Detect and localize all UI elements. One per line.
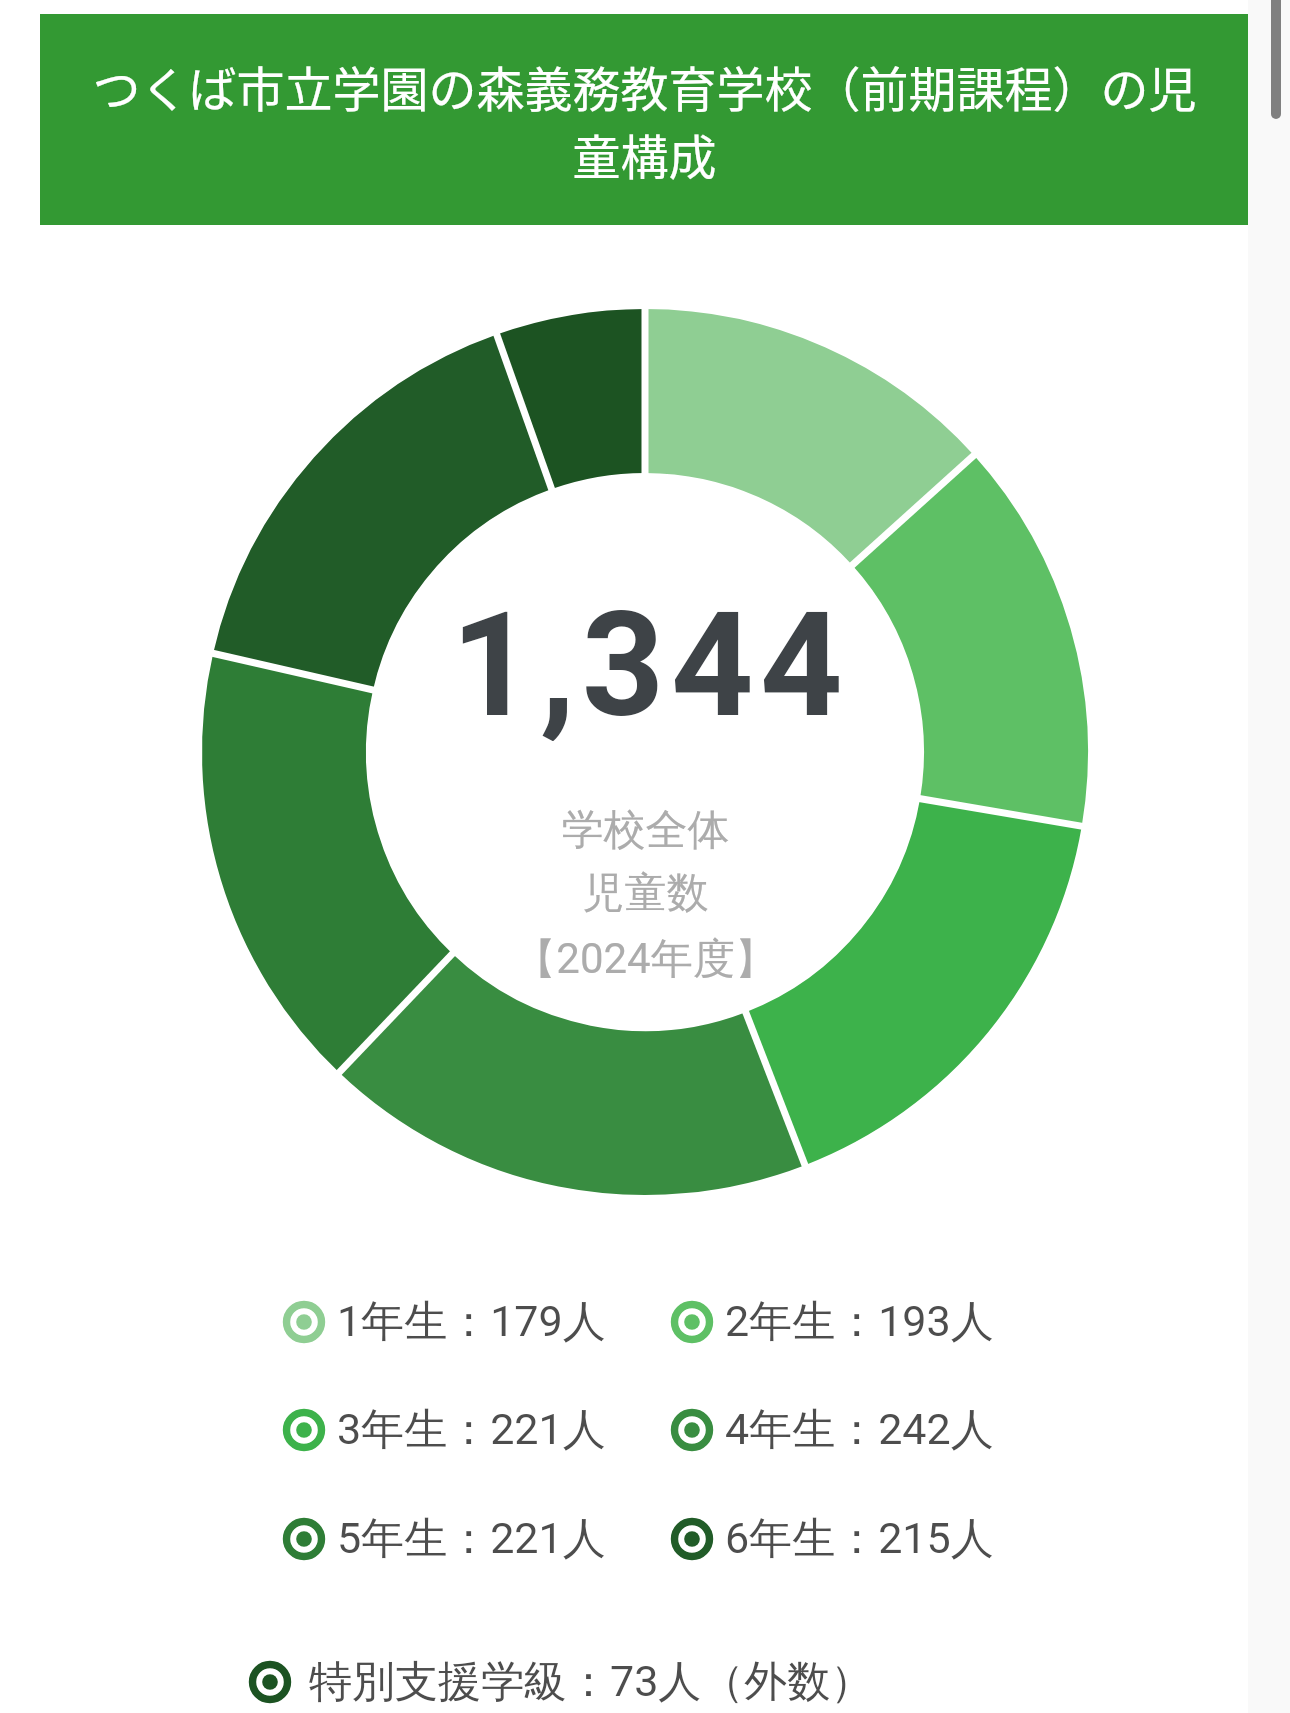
button[interactable]: 特別支援学級：73人（外数）	[249, 1651, 874, 1713]
staticText: 4年生：242人	[725, 1403, 994, 1457]
staticText: 6年生：215人	[725, 1512, 994, 1566]
button[interactable]: 1年生：179人	[283, 1291, 606, 1353]
staticText: 5年生：221人	[337, 1512, 606, 1566]
button[interactable]: 4年生：242人	[671, 1399, 994, 1461]
staticText: 2年生：193人	[725, 1295, 994, 1349]
staticText: 1年生：179人	[337, 1295, 606, 1349]
button[interactable]: 6年生：215人	[671, 1508, 994, 1570]
staticText: つくば市立学園の森義務教育学校（前期課程）の児 童構成	[40, 51, 1249, 189]
button[interactable]: 5年生：221人	[283, 1508, 606, 1570]
staticText: 学校全体 児童数 【2024年度】	[514, 804, 777, 985]
staticText: 1,344	[451, 581, 850, 741]
staticText: 特別支援学級：73人（外数）	[309, 1655, 874, 1709]
staticText: 3年生：221人	[337, 1403, 606, 1457]
button[interactable]: 2年生：193人	[671, 1291, 994, 1353]
button[interactable]: 3年生：221人	[283, 1399, 606, 1461]
